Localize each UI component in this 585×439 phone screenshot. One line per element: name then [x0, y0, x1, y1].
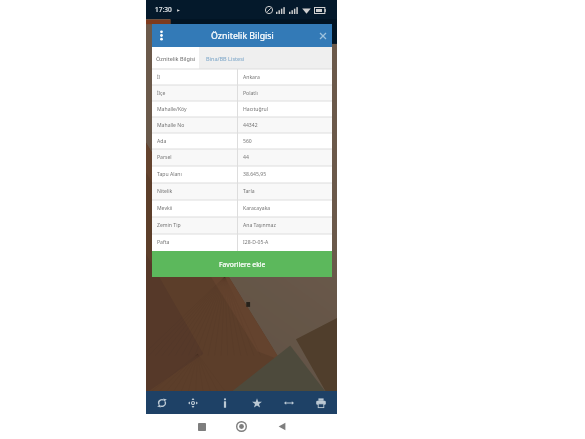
staticText: 44342: [243, 122, 258, 129]
staticText: Bina/BB Listesi: [206, 55, 245, 62]
button[interactable]: Mevkii: [152, 200, 332, 217]
button[interactable]: İl: [152, 69, 332, 85]
button[interactable]: İlçe: [152, 85, 332, 101]
button[interactable]: Mahalle/Köy: [152, 101, 332, 117]
staticText: Ana Taşınmaz: [243, 222, 276, 229]
staticText: Nitelik: [157, 188, 173, 195]
button[interactable]: Öznitelik Bilgisi: [152, 47, 199, 69]
button[interactable]: Recents: [193, 418, 210, 435]
button[interactable]: Pafta: [152, 234, 332, 251]
staticText: Mevkii: [157, 205, 173, 212]
staticText: Karacayaka: [243, 205, 271, 212]
button[interactable]: Nitelik: [152, 183, 332, 200]
staticText: İl: [157, 74, 161, 81]
button[interactable]: More options: [152, 24, 170, 47]
button[interactable]: Home: [233, 418, 250, 435]
staticText: Polatlı: [243, 90, 258, 97]
staticText: 560: [243, 138, 252, 145]
staticText: Öznitelik Bilgisi: [156, 55, 196, 62]
button[interactable]: Back: [273, 418, 290, 435]
staticText: İlçe: [157, 90, 166, 97]
button[interactable]: Close: [314, 24, 332, 47]
button[interactable]: Tapu Alanı: [152, 166, 332, 183]
staticText: Ankara: [243, 74, 260, 81]
button[interactable]: Print: [305, 391, 337, 414]
button[interactable]: Locate: [177, 391, 209, 414]
staticText: Hacıtuğrul: [243, 106, 269, 113]
staticText: I28-D-05-A: [243, 239, 269, 246]
button[interactable]: Mahalle No: [152, 117, 332, 133]
button[interactable]: Favorites: [241, 391, 273, 414]
button[interactable]: Ada: [152, 133, 332, 149]
staticText: 44: [243, 154, 249, 161]
button[interactable]: Favorilere ekle: [152, 251, 332, 277]
staticText: Zemin Tip: [157, 222, 181, 229]
button[interactable]: Zemin Tip: [152, 217, 332, 234]
staticText: Mahalle/Köy: [157, 106, 187, 113]
staticText: Tarla: [243, 188, 255, 195]
staticText: Favorilere ekle: [219, 260, 266, 269]
button[interactable]: Parsel: [152, 149, 332, 166]
button[interactable]: Measure: [273, 391, 305, 414]
button[interactable]: Info: [209, 391, 241, 414]
staticText: 17:30: [155, 5, 172, 14]
staticText: Ada: [157, 138, 167, 145]
button[interactable]: Bina/BB Listesi: [199, 47, 252, 69]
staticText: 38.645,95: [243, 171, 267, 178]
button[interactable]: Refresh: [146, 391, 177, 414]
staticText: Parsel: [157, 154, 172, 161]
staticText: Pafta: [157, 239, 170, 246]
staticText: Tapu Alanı: [157, 171, 182, 178]
staticText: Mahalle No: [157, 122, 185, 129]
staticText: Öznitelik Bilgisi: [211, 30, 274, 42]
